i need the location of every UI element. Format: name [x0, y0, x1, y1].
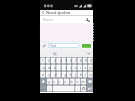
staticText: ů — [89, 72, 92, 77]
button[interactable]: . — [74, 85, 80, 92]
staticText: 5 — [65, 58, 67, 63]
button[interactable]: v — [62, 78, 68, 85]
staticText: w — [48, 65, 51, 70]
button[interactable]: c — [56, 78, 62, 85]
button[interactable]: m — [80, 78, 86, 85]
button[interactable]: Komu — [40, 16, 93, 23]
staticText: Odeslat — [82, 45, 91, 48]
button[interactable]: w — [46, 64, 52, 71]
staticText: a — [42, 72, 44, 77]
staticText: z — [70, 65, 72, 70]
staticText: t — [65, 65, 67, 70]
button[interactable]: Text — [49, 44, 78, 47]
button[interactable]: Enter — [86, 85, 93, 92]
button[interactable]: i — [78, 64, 83, 71]
button[interactable]: n — [74, 78, 80, 85]
button[interactable]: Attach — [40, 41, 48, 50]
button[interactable]: Space — [52, 85, 74, 92]
staticText: r — [60, 65, 62, 70]
staticText: 4 — [60, 58, 62, 63]
button[interactable]: Emoji — [80, 85, 86, 92]
button[interactable]: o — [83, 64, 88, 71]
button[interactable]: 8 — [78, 57, 83, 64]
button[interactable]: y — [46, 78, 51, 85]
staticText: k — [80, 72, 82, 77]
button[interactable]: 1 — [40, 57, 46, 64]
staticText: Text — [50, 44, 56, 47]
staticText: 8 — [80, 58, 82, 63]
button[interactable]: 5 — [63, 57, 68, 64]
button[interactable]: e — [52, 64, 58, 71]
staticText: Komu — [43, 17, 53, 22]
staticText: v — [64, 79, 66, 84]
staticText: ?123 — [40, 87, 46, 90]
staticText: y — [48, 79, 50, 84]
staticText: 1 — [42, 58, 44, 63]
staticText: p — [89, 65, 92, 70]
button[interactable]: Suggestions — [40, 50, 93, 57]
button[interactable]: z — [68, 64, 73, 71]
button[interactable]: d — [52, 71, 58, 78]
staticText: e — [54, 65, 56, 70]
button[interactable]: k — [78, 71, 83, 78]
staticText: , — [49, 86, 50, 91]
staticText: u — [74, 65, 77, 70]
staticText: 9 — [85, 58, 87, 63]
button[interactable]: Back — [40, 10, 46, 15]
staticText: 3 — [54, 58, 56, 63]
staticText: h — [69, 72, 72, 77]
staticText: n — [76, 79, 79, 84]
staticText: i — [80, 65, 81, 70]
staticText: o — [84, 65, 87, 70]
button[interactable]: 6 — [68, 57, 73, 64]
staticText: 7 — [75, 58, 77, 63]
staticText: j — [75, 72, 76, 77]
staticText: b — [70, 79, 73, 84]
button[interactable]: 7 — [73, 57, 78, 64]
staticText: d — [54, 72, 57, 77]
button[interactable]: b — [68, 78, 74, 85]
button[interactable]: 9 — [83, 57, 88, 64]
button[interactable]: r — [58, 64, 63, 71]
button[interactable]: Backspace — [86, 78, 93, 85]
button[interactable]: q — [40, 64, 46, 71]
button[interactable]: , — [46, 85, 52, 92]
button[interactable]: j — [73, 71, 78, 78]
button[interactable]: f — [58, 71, 63, 78]
button[interactable]: u — [73, 64, 78, 71]
button[interactable]: Symbols — [40, 85, 46, 92]
staticText: q — [42, 65, 45, 70]
staticText: x — [53, 79, 55, 84]
button[interactable]: s — [46, 71, 52, 78]
staticText: 6 — [70, 58, 72, 63]
staticText: g — [64, 72, 67, 77]
button[interactable]: a — [40, 71, 46, 78]
staticText: 2 — [48, 58, 50, 63]
staticText: f — [60, 72, 62, 77]
button[interactable]: 0 — [88, 57, 93, 64]
button[interactable]: l — [83, 71, 88, 78]
button[interactable]: 2 — [46, 57, 52, 64]
button[interactable]: t — [63, 64, 68, 71]
staticText: l — [85, 72, 86, 77]
button[interactable]: x — [51, 78, 56, 85]
staticText: 0 — [90, 58, 92, 63]
staticText: m — [81, 79, 85, 84]
button[interactable]: h — [68, 71, 73, 78]
button[interactable]: Shift — [40, 78, 46, 85]
button[interactable]: Odeslat — [82, 44, 91, 48]
button[interactable]: p — [88, 64, 93, 71]
button[interactable]: ů — [88, 71, 93, 78]
staticText: c — [58, 79, 60, 84]
staticText: Nová zpráva — [46, 10, 71, 15]
button[interactable]: g — [63, 71, 68, 78]
button[interactable]: 3 — [52, 57, 58, 64]
button[interactable]: Add contact — [84, 16, 92, 23]
staticText: s — [48, 72, 50, 77]
staticText: . — [77, 86, 78, 91]
button[interactable]: 4 — [58, 57, 63, 64]
